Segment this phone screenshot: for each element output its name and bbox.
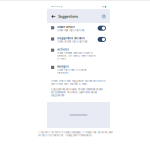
staticText: Suggestions are based on your conversati… (51, 88, 103, 97)
staticText: Show chat reply options (57, 29, 84, 32)
staticText: ? (103, 15, 104, 18)
staticText: Show reply and birthday reminders (57, 68, 86, 74)
staticText: Show relevant shortcuts to use in calend… (57, 51, 95, 60)
staticText: Show sticker reply options (57, 40, 87, 43)
button[interactable]: Help (102, 14, 106, 19)
button[interactable]: Actions (47, 45, 110, 63)
staticText: Suggested stickers (57, 37, 84, 40)
staticText: ▪▫ ▮ (102, 5, 106, 8)
staticText: Smart Reply and suggested actions are vi… (51, 79, 105, 85)
button[interactable]: Suggested stickers (47, 34, 110, 45)
staticText: Smart Reply (57, 25, 75, 29)
staticText: Actions (57, 48, 68, 51)
staticText: ▫▫▫ ▫ ▪ ▫ ▫ (51, 5, 62, 8)
staticText: Nudges (57, 65, 68, 68)
button[interactable]: Nudges (47, 63, 110, 77)
button[interactable]: Back (51, 14, 56, 19)
staticText: If you use it be more in Google Messages… (37, 131, 112, 137)
button[interactable]: Smart Reply (47, 23, 110, 34)
staticText: Suggestions (58, 14, 78, 18)
